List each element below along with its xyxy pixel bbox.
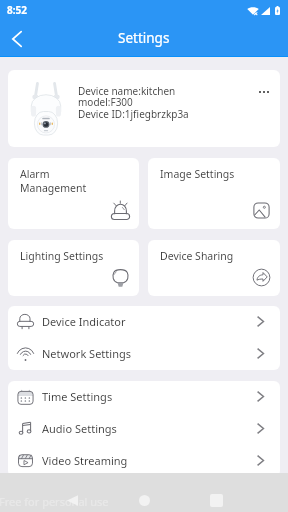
staticText: Network Settings [42, 346, 131, 361]
button[interactable]: Time Settings [8, 381, 280, 413]
button[interactable]: Back [0, 20, 34, 57]
button[interactable]: Audio Settings [8, 413, 280, 445]
button[interactable]: More options [252, 80, 276, 104]
button[interactable]: Device name:kitchen model:F300 Device ID… [8, 70, 280, 147]
button[interactable]: Home [126, 482, 162, 512]
button[interactable]: Device Sharing [148, 240, 280, 296]
staticText: Device Sharing [160, 249, 234, 263]
button[interactable]: Alarm Management [8, 158, 139, 229]
button[interactable]: Back [54, 482, 90, 512]
button[interactable]: Recents [198, 482, 234, 512]
staticText: Time Settings [42, 389, 113, 404]
staticText: Video Streaming [42, 453, 128, 468]
staticText: Device name:kitchen model:F300 Device ID… [78, 84, 189, 121]
staticText: Device Indicator [42, 314, 126, 329]
button[interactable]: Network Settings [8, 338, 280, 370]
staticText: Image Settings [160, 167, 235, 181]
button[interactable]: Image Settings [148, 158, 280, 229]
staticText: 8:52 [7, 3, 27, 17]
staticText: Alarm Management [20, 167, 87, 195]
button[interactable]: Video Streaming [8, 445, 280, 477]
button[interactable]: Lighting Settings [8, 240, 139, 296]
staticText: Lighting Settings [20, 249, 104, 263]
staticText: Audio Settings [42, 421, 117, 436]
button[interactable]: Device Indicator [8, 306, 280, 338]
staticText: Settings [118, 29, 170, 47]
staticText: Free for personal use [0, 494, 109, 509]
